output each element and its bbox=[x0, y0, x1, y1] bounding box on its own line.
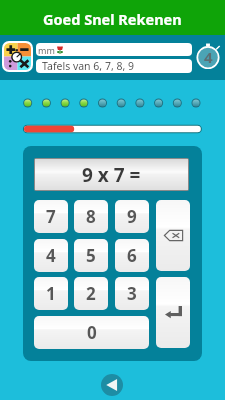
staticText: 6 bbox=[127, 244, 137, 267]
staticText: 9 bbox=[127, 205, 137, 228]
staticText: 0 bbox=[87, 321, 97, 344]
button[interactable]: Tafels van 6, 7, 8, 9 bbox=[36, 59, 192, 73]
button[interactable]: 3 bbox=[115, 277, 149, 310]
button[interactable]: 1 bbox=[34, 277, 68, 310]
button[interactable]: 8 bbox=[74, 200, 108, 233]
button[interactable]: 5 bbox=[74, 239, 108, 272]
button[interactable]: 4 bbox=[34, 239, 68, 272]
staticText: mm bbox=[38, 44, 55, 56]
button[interactable]: Backspace bbox=[156, 200, 190, 271]
button[interactable]: 9 bbox=[115, 200, 149, 233]
staticText: 8 bbox=[86, 205, 96, 228]
button[interactable]: Enter bbox=[156, 277, 190, 348]
staticText: 3 bbox=[127, 282, 137, 305]
staticText: Tafels van 6, 7, 8, 9 bbox=[42, 59, 134, 73]
staticText: 2 bbox=[86, 282, 96, 305]
staticText: 4 bbox=[46, 244, 56, 267]
button[interactable]: Timer bbox=[195, 43, 221, 69]
button[interactable]: 2 bbox=[74, 277, 108, 310]
staticText: 9 x 7 = bbox=[82, 162, 141, 188]
button[interactable]: 7 bbox=[34, 200, 68, 233]
staticText: 4 bbox=[204, 47, 213, 67]
staticText: 5 bbox=[86, 244, 96, 267]
staticText: Goed Snel Rekenen bbox=[43, 9, 182, 29]
button[interactable]: mm bbox=[36, 43, 192, 56]
staticText: 1 bbox=[46, 282, 56, 305]
staticText: 7 bbox=[46, 205, 56, 228]
button[interactable]: 0 bbox=[34, 316, 149, 349]
button[interactable]: 9 x 7 = bbox=[35, 159, 188, 190]
button[interactable]: App icon bbox=[2, 41, 33, 72]
button[interactable]: Back bbox=[101, 374, 123, 396]
button[interactable]: 6 bbox=[115, 239, 149, 272]
